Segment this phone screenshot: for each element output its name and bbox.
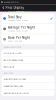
- button[interactable]: Argentine Peso (ARS): [2, 82, 54, 89]
- button[interactable]: Australian Dollar (AUD): [2, 89, 54, 96]
- button[interactable]: Euro (EUR): [2, 63, 54, 70]
- button[interactable]: British Pound (GBP): [2, 56, 54, 63]
- staticText: British Pound (GBP): [3, 58, 23, 61]
- staticText: Average Per Night: [8, 26, 35, 29]
- staticText: Room rate only: [8, 40, 22, 42]
- staticText: Argentine Peso (ARS): [3, 84, 23, 87]
- button[interactable]: Total Stay: [2, 13, 54, 23]
- button[interactable]: Base Per Night: [2, 34, 54, 44]
- staticText: Euro (EUR): [3, 65, 14, 68]
- staticText: Arab Emirates Dirham: [3, 77, 26, 80]
- staticText: All Currencies: [3, 72, 13, 74]
- staticText: Price Display: [5, 5, 24, 10]
- button[interactable]: Arab Emirates Dirham: [2, 76, 54, 82]
- staticText: Includes taxes & fees: [8, 19, 28, 22]
- staticText: Base Per Night: [8, 36, 30, 40]
- staticText: Includes taxes & fees: [8, 29, 28, 32]
- staticText: Total Stay: [8, 15, 21, 19]
- staticText: US Dollar (USD): [3, 51, 22, 54]
- staticText: Australian Dollar (AUD): [3, 91, 29, 94]
- button[interactable]: Average Per Night: [2, 24, 54, 34]
- button[interactable]: Back: [3, 6, 4, 9]
- staticText: Booking confirmed: [3, 1, 18, 3]
- button[interactable]: US Dollar (USD): [2, 49, 54, 56]
- staticText: Suggested Currencies: [3, 46, 21, 48]
